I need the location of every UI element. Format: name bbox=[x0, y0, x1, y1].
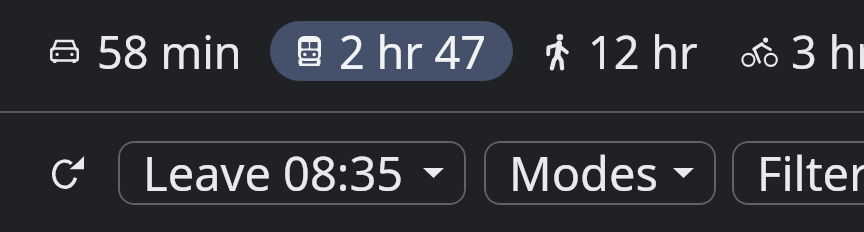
button[interactable]: Filter bbox=[732, 141, 864, 205]
button[interactable]: Leave 08:35 bbox=[118, 141, 466, 205]
button[interactable]: Transit 2 hours 47 minutes bbox=[270, 21, 513, 81]
button[interactable]: Refresh bbox=[36, 140, 100, 204]
staticText: 12 hr bbox=[588, 21, 698, 81]
staticText: Filter bbox=[757, 141, 864, 205]
button[interactable]: Modes bbox=[484, 141, 716, 205]
staticText: 58 min bbox=[97, 21, 242, 81]
staticText: 2 hr 47 bbox=[339, 21, 487, 81]
staticText: Leave 08:35 bbox=[143, 141, 404, 205]
staticText: 3 hr bbox=[791, 21, 864, 81]
button[interactable]: Walking 12 hours bbox=[518, 21, 723, 81]
button[interactable]: Driving 58 minutes bbox=[20, 21, 267, 81]
staticText: Modes bbox=[509, 141, 658, 205]
button[interactable]: Cycling 3 hours bbox=[718, 21, 864, 81]
